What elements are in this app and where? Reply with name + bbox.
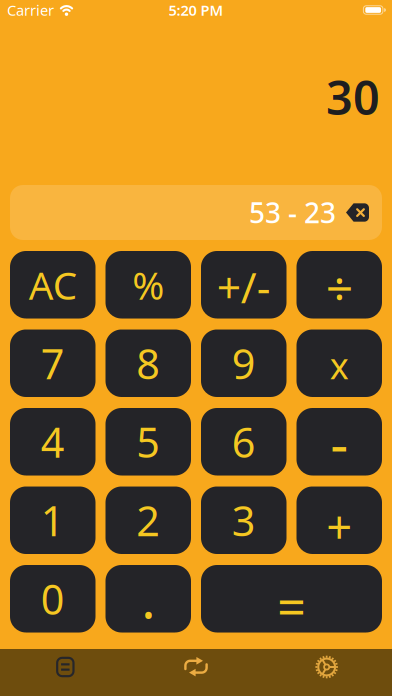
button[interactable]: . xyxy=(105,565,191,632)
staticText: 7 xyxy=(41,336,65,391)
staticText: x xyxy=(330,341,349,389)
button[interactable]: Settings xyxy=(261,649,392,696)
staticText: . xyxy=(141,562,155,633)
staticText: ÷ xyxy=(326,256,353,320)
staticText: 3 xyxy=(232,493,256,548)
button[interactable]: 8 xyxy=(105,329,191,397)
button[interactable]: 53 - 23 xyxy=(10,185,382,240)
button[interactable]: % xyxy=(105,251,191,318)
button[interactable]: Delete xyxy=(346,202,369,222)
staticText: + xyxy=(326,496,352,556)
button[interactable]: 6 xyxy=(201,408,286,475)
button[interactable]: = xyxy=(201,565,382,632)
button[interactable]: + xyxy=(296,486,382,554)
staticText: Carrier xyxy=(7,0,54,20)
staticText: 1 xyxy=(41,493,65,548)
staticText: 2 xyxy=(136,493,160,548)
staticText: 53 - 23 xyxy=(249,194,336,231)
button[interactable]: 9 xyxy=(201,329,286,397)
staticText: 0 xyxy=(41,571,65,626)
staticText: 9 xyxy=(232,336,256,391)
button[interactable]: Converter xyxy=(131,649,261,696)
button[interactable]: 3 xyxy=(201,486,286,554)
staticText: % xyxy=(132,259,164,310)
button[interactable]: AC xyxy=(10,251,95,318)
staticText: 30 xyxy=(326,66,380,128)
staticText: 8 xyxy=(136,336,160,391)
button[interactable]: 2 xyxy=(105,486,191,554)
staticText: = xyxy=(277,572,306,639)
staticText: AC xyxy=(29,259,77,310)
button[interactable]: ÷ xyxy=(296,251,382,318)
staticText: 4 xyxy=(41,414,65,469)
button[interactable]: 4 xyxy=(10,408,95,475)
staticText: 6 xyxy=(232,414,256,469)
staticText: 5:20 PM xyxy=(168,0,223,20)
button[interactable]: 0 xyxy=(10,565,95,632)
staticText: - xyxy=(330,406,348,480)
button[interactable]: +/- xyxy=(201,251,286,318)
staticText: +/- xyxy=(217,258,271,315)
button[interactable]: x xyxy=(296,329,382,397)
button[interactable]: 1 xyxy=(10,486,95,554)
button[interactable]: - xyxy=(296,408,382,475)
button[interactable]: 5 xyxy=(105,408,191,475)
button[interactable]: History xyxy=(0,649,131,696)
button[interactable]: 7 xyxy=(10,329,95,397)
staticText: 5 xyxy=(136,414,160,469)
